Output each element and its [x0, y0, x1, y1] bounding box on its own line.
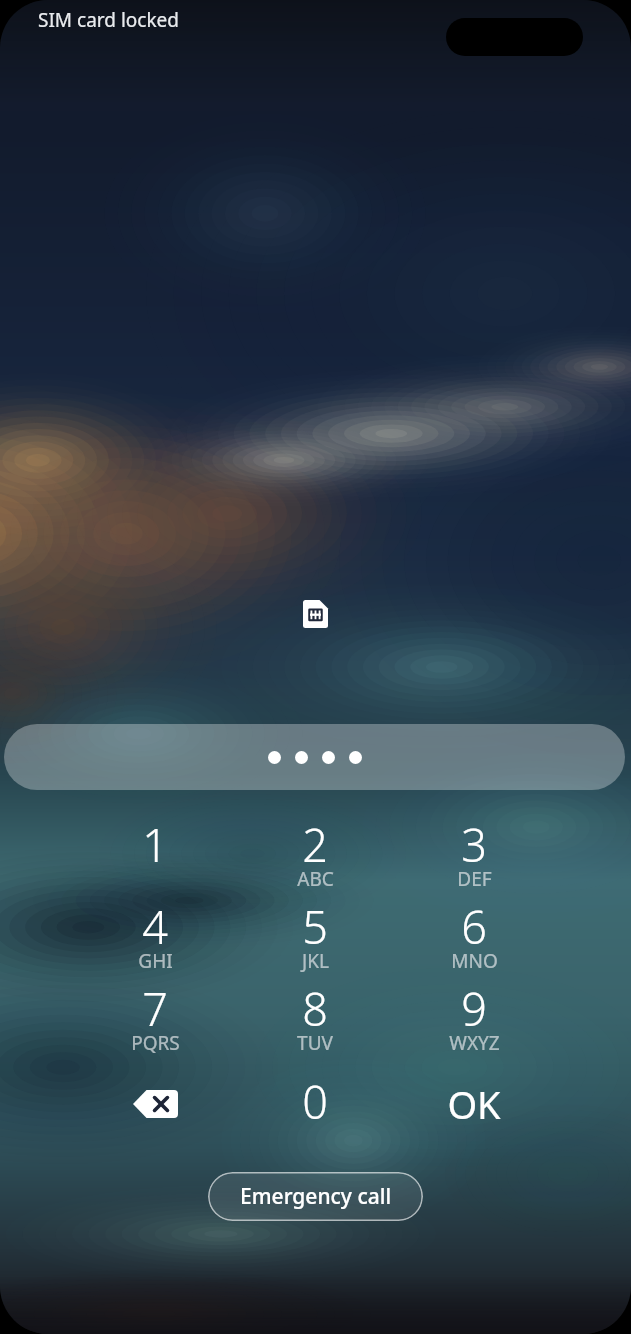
- staticText: MNO: [451, 948, 498, 974]
- staticText: JKL: [302, 948, 329, 974]
- button[interactable]: 4: [80, 890, 230, 968]
- button[interactable]: 8: [240, 972, 390, 1050]
- staticText: 8: [302, 978, 328, 1039]
- staticText: PQRS: [131, 1030, 180, 1056]
- staticText: 2: [302, 814, 328, 875]
- staticText: 9: [461, 978, 487, 1039]
- button[interactable]: 3: [399, 808, 549, 886]
- staticText: TUV: [297, 1030, 333, 1056]
- button[interactable]: 5: [240, 890, 390, 968]
- button[interactable]: Backspace: [80, 1065, 230, 1143]
- button[interactable]: [4, 724, 625, 790]
- staticText: 0: [302, 1071, 328, 1132]
- staticText: DEF: [457, 866, 492, 892]
- staticText: Emergency call: [240, 1182, 392, 1211]
- staticText: GHI: [138, 948, 173, 974]
- button[interactable]: 1: [80, 808, 230, 886]
- button[interactable]: OK: [399, 1065, 549, 1143]
- staticText: WXYZ: [449, 1030, 500, 1056]
- button[interactable]: 0: [240, 1065, 390, 1143]
- button[interactable]: 7: [80, 972, 230, 1050]
- staticText: 4: [142, 896, 168, 957]
- staticText: 3: [461, 814, 487, 875]
- staticText: 5: [302, 896, 328, 957]
- staticText: ABC: [297, 866, 334, 892]
- button[interactable]: 2: [240, 808, 390, 886]
- staticText: 6: [461, 896, 487, 957]
- button[interactable]: 9: [399, 972, 549, 1050]
- staticText: OK: [447, 1078, 501, 1130]
- button[interactable]: 6: [399, 890, 549, 968]
- staticText: SIM card locked: [38, 7, 179, 33]
- staticText: 1: [142, 814, 168, 875]
- staticText: 7: [142, 978, 168, 1039]
- button[interactable]: Emergency call: [208, 1172, 423, 1221]
